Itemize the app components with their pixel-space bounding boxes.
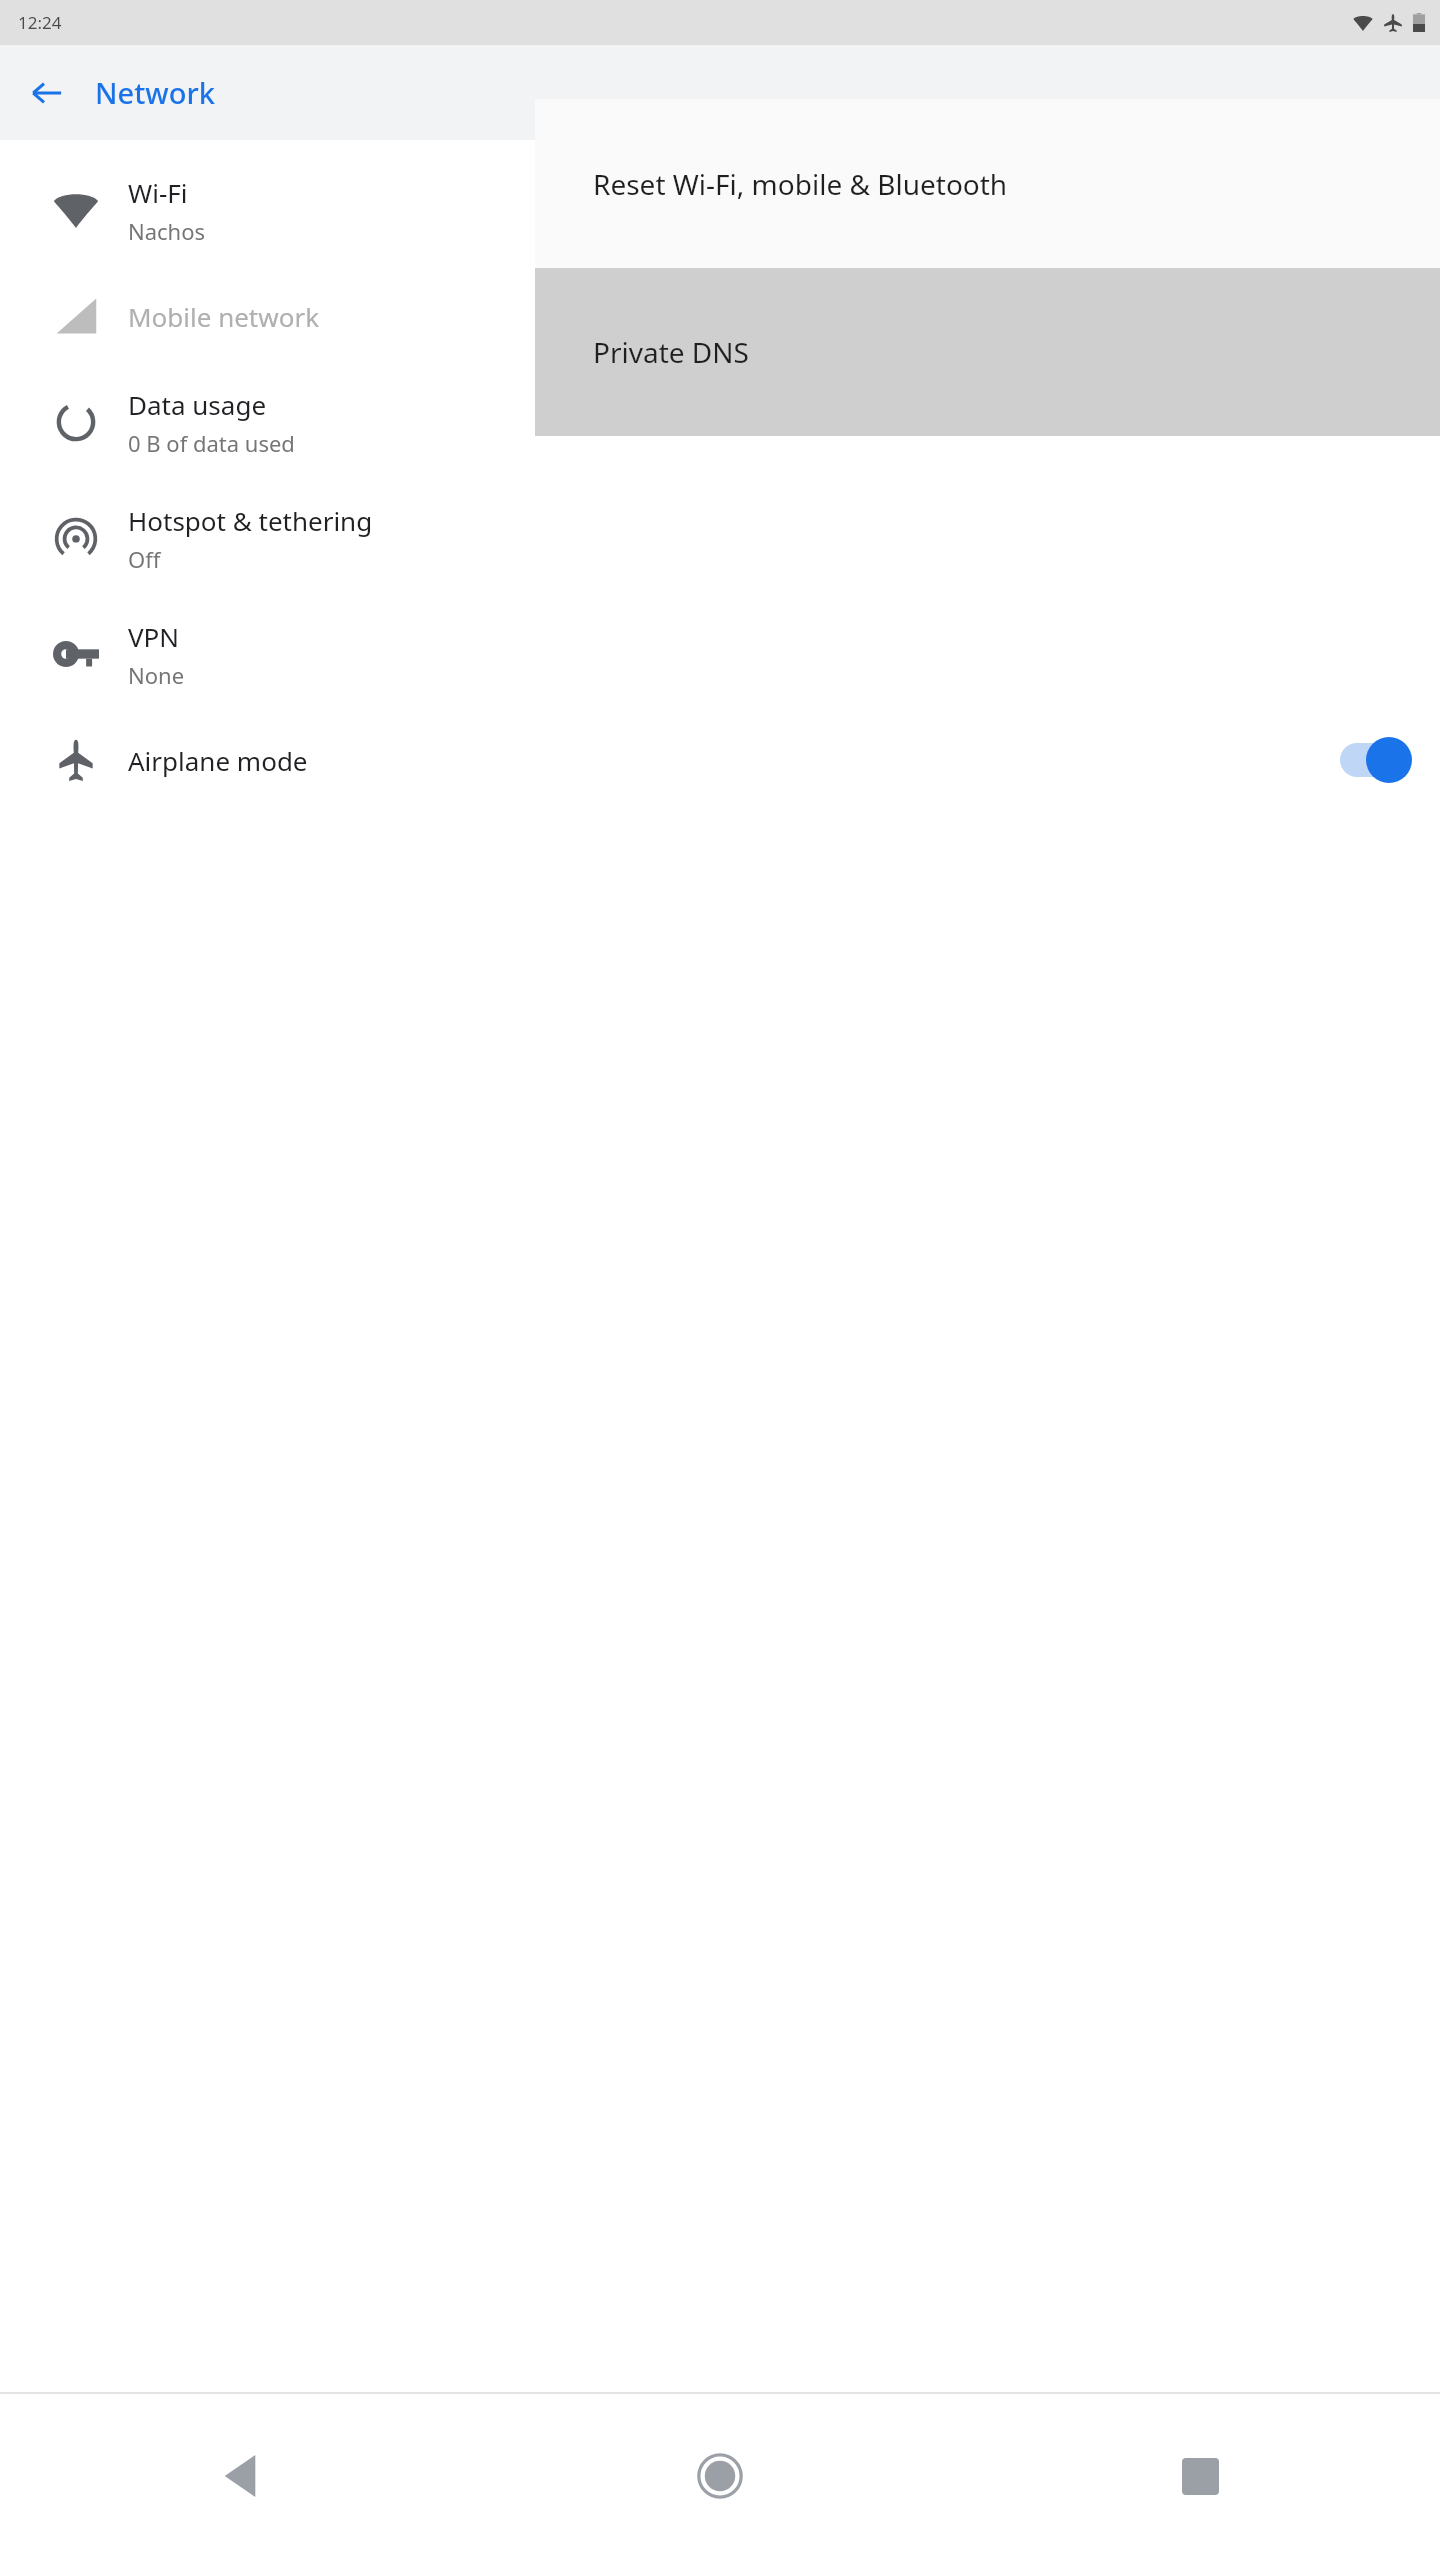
staticText: Off xyxy=(128,544,161,574)
staticText: 0 B of data used xyxy=(128,428,295,458)
button[interactable]: Data usage xyxy=(0,364,1440,480)
staticText: VPN xyxy=(128,619,180,654)
staticText: Airplane mode xyxy=(128,743,308,778)
staticText: Data usage xyxy=(128,387,267,422)
staticText: Reset Wi-Fi, mobile & Bluetooth xyxy=(593,165,1008,203)
staticText: None xyxy=(128,660,185,690)
staticText: Private DNS xyxy=(593,333,749,371)
staticText: Mobile network xyxy=(128,299,320,334)
staticText: Wi-Fi xyxy=(128,175,188,210)
staticText: 12:24 xyxy=(18,11,62,34)
button[interactable]: Back xyxy=(13,59,81,127)
button[interactable]: VPN xyxy=(0,596,1440,712)
button[interactable]: Home xyxy=(672,2428,768,2524)
button[interactable]: Private DNS xyxy=(535,268,1440,436)
button[interactable]: Recent apps xyxy=(1152,2428,1248,2524)
button[interactable]: Wi-Fi xyxy=(0,152,1440,268)
staticText: Hotspot & tethering xyxy=(128,503,373,538)
button[interactable]: Back xyxy=(192,2428,288,2524)
button[interactable]: Hotspot & tethering xyxy=(0,480,1440,596)
button[interactable]: Toggle xyxy=(1338,736,1412,784)
button[interactable]: Mobile network xyxy=(0,268,1440,364)
staticText: Network xyxy=(95,73,215,112)
button[interactable]: Reset Wi-Fi, mobile & Bluetooth xyxy=(535,99,1440,268)
button[interactable]: Airplane mode xyxy=(0,712,1440,808)
staticText: Nachos xyxy=(128,216,206,246)
